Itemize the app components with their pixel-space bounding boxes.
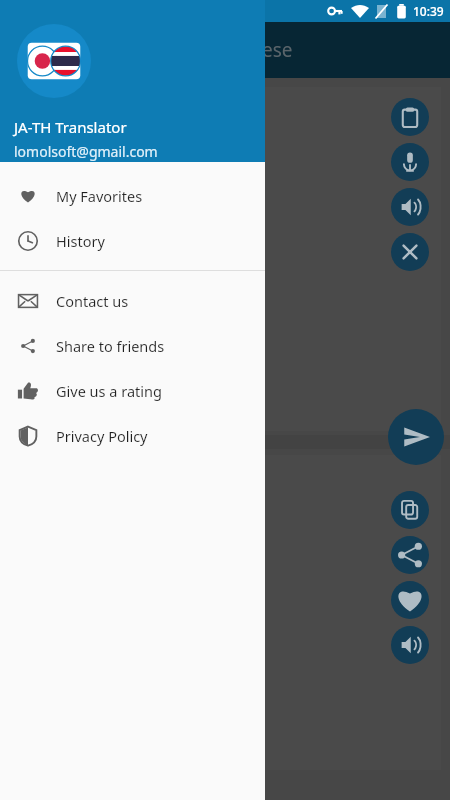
button[interactable]: Translate	[388, 409, 444, 465]
staticText: History	[56, 231, 105, 251]
staticText: Contact us	[56, 291, 129, 311]
button[interactable]: Give us a rating	[0, 368, 265, 413]
staticText: 10:39	[413, 3, 444, 19]
staticText: Privacy Policy	[56, 426, 148, 446]
button[interactable]: Copy	[391, 491, 429, 529]
staticText: Share to friends	[56, 336, 165, 356]
button[interactable]: Clear	[391, 233, 429, 271]
button[interactable]: Privacy Policy	[0, 413, 265, 458]
button[interactable]: My Favorites	[0, 173, 265, 218]
staticText: My Favorites	[56, 186, 143, 206]
button[interactable]: Voice input	[391, 143, 429, 181]
button[interactable]: Contact us	[0, 278, 265, 323]
staticText: Give us a rating	[56, 381, 162, 401]
button[interactable]: Favorite	[391, 581, 429, 619]
staticText: lomolsoft@gmail.com	[14, 142, 158, 161]
button[interactable]: Speak result	[391, 626, 429, 664]
button[interactable]: Share	[391, 536, 429, 574]
staticText: Japanese	[212, 37, 293, 63]
button[interactable]: History	[0, 218, 265, 263]
button[interactable]: Share to friends	[0, 323, 265, 368]
staticText: JA-TH Translator	[14, 117, 127, 137]
button[interactable]: Paste	[391, 98, 429, 136]
button[interactable]: Speak	[391, 188, 429, 226]
